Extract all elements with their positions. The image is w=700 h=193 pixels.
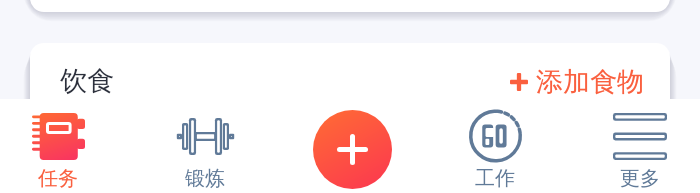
button[interactable]: Add	[313, 110, 392, 189]
button[interactable]: 添加食物	[504, 61, 650, 103]
staticText: 添加食物	[536, 65, 644, 99]
staticText: 更多	[620, 166, 660, 191]
staticText: 任务	[38, 166, 78, 191]
staticText: 饮食	[60, 64, 114, 98]
staticText: 锻炼	[185, 166, 225, 191]
staticText: 工作	[475, 166, 515, 191]
button[interactable]: Work timer	[433, 99, 557, 193]
button[interactable]: Workout	[143, 99, 267, 193]
button[interactable]: Tasks	[0, 99, 120, 193]
button[interactable]: More	[578, 99, 700, 193]
